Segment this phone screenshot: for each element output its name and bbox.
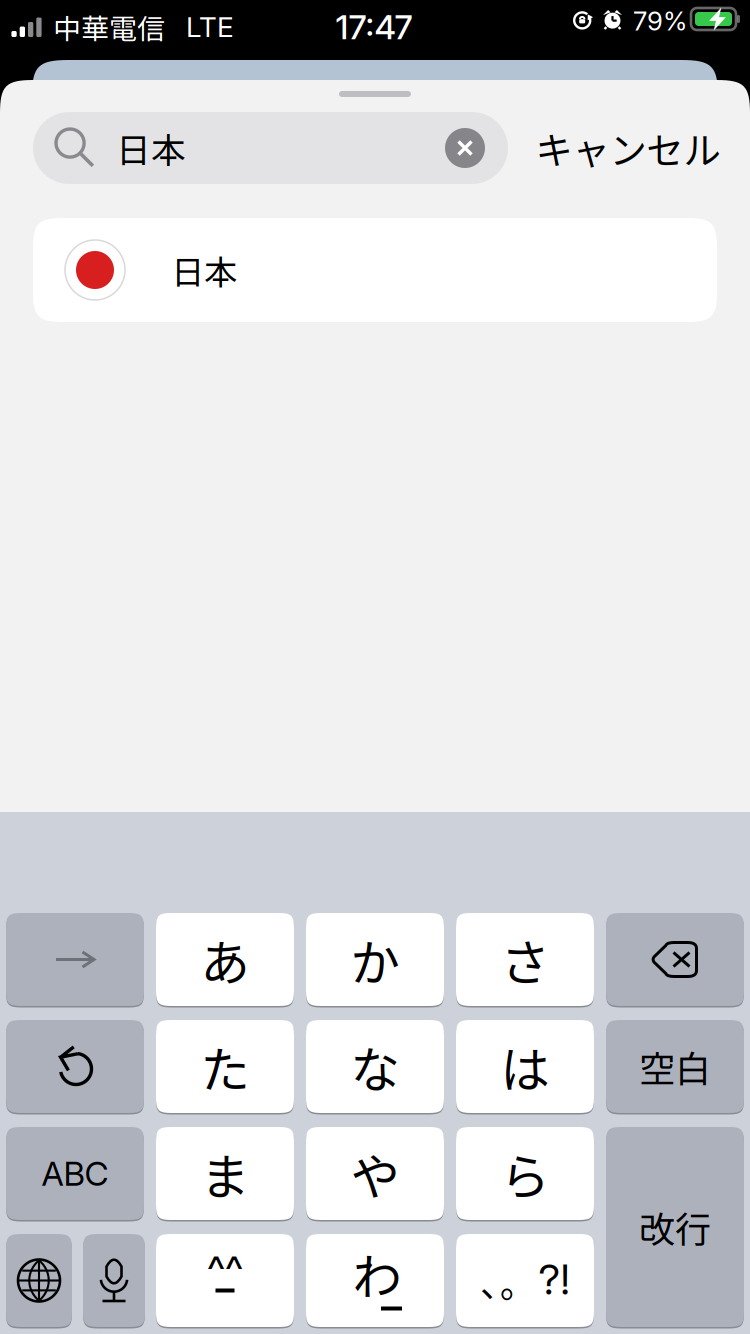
staticText: 17:47 bbox=[335, 7, 412, 47]
staticText: な bbox=[350, 1031, 399, 1102]
staticText: ^^ bbox=[207, 1245, 243, 1295]
staticText: 空白 bbox=[639, 1040, 711, 1092]
button[interactable]: Dictation bbox=[83, 1234, 145, 1329]
staticText: キャンセル bbox=[535, 121, 720, 175]
staticText: 、 bbox=[480, 1255, 516, 1307]
staticText: あ bbox=[200, 924, 249, 995]
button[interactable]: さ bbox=[456, 913, 594, 1008]
staticText: 中華電信 bbox=[53, 7, 165, 47]
staticText: ABC bbox=[41, 1153, 108, 1194]
button[interactable]: 空白 bbox=[606, 1020, 744, 1115]
staticText: ま bbox=[200, 1138, 249, 1209]
staticText: 79% bbox=[633, 5, 687, 37]
staticText: さ bbox=[500, 924, 549, 995]
button[interactable]: wa bbox=[306, 1234, 444, 1329]
staticText: 改行 bbox=[639, 1201, 711, 1253]
button[interactable]: な bbox=[306, 1020, 444, 1115]
button[interactable]: Next keyboard bbox=[6, 1234, 72, 1329]
staticText: わ bbox=[352, 1238, 401, 1309]
button[interactable]: 改行 bbox=[606, 1127, 744, 1329]
button[interactable]: Kaomoji bbox=[156, 1234, 294, 1329]
button[interactable]: ま bbox=[156, 1127, 294, 1222]
button[interactable]: や bbox=[306, 1127, 444, 1222]
staticText: か bbox=[350, 924, 399, 995]
staticText: 日本 bbox=[116, 123, 186, 173]
staticText: や bbox=[350, 1138, 399, 1209]
button[interactable]: Undo bbox=[6, 1020, 144, 1115]
button[interactable]: Punctuation bbox=[456, 1234, 594, 1329]
button[interactable]: 日本 bbox=[33, 218, 717, 322]
staticText: は bbox=[500, 1031, 549, 1102]
button[interactable]: Clear text bbox=[445, 128, 485, 168]
button[interactable]: ABC bbox=[6, 1127, 144, 1222]
staticText: LTE bbox=[186, 10, 234, 44]
staticText: た bbox=[200, 1031, 249, 1102]
staticText: ら bbox=[500, 1138, 549, 1209]
button[interactable]: か bbox=[306, 913, 444, 1008]
button[interactable]: た bbox=[156, 1020, 294, 1115]
button[interactable]: Delete bbox=[606, 913, 744, 1008]
staticText: ?! bbox=[538, 1254, 569, 1304]
staticText: 日本 bbox=[171, 246, 237, 294]
button[interactable]: キャンセル bbox=[530, 112, 726, 184]
button[interactable]: あ bbox=[156, 913, 294, 1008]
staticText: 。 bbox=[500, 1255, 536, 1307]
button[interactable]: ら bbox=[456, 1127, 594, 1222]
button[interactable]: は bbox=[456, 1020, 594, 1115]
button[interactable]: Next candidate bbox=[6, 913, 144, 1008]
